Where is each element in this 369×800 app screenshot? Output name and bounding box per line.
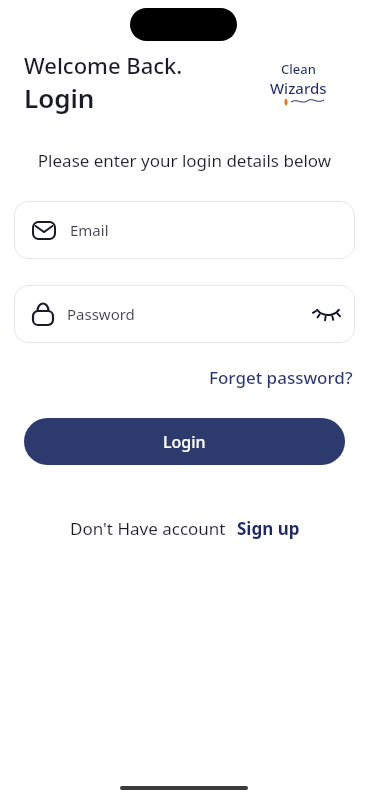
staticText: Welcome Back. [24, 50, 183, 80]
button[interactable]: Login [24, 418, 345, 465]
button[interactable]: Sign up [237, 517, 300, 540]
staticText: Forget password? [209, 366, 353, 389]
staticText: Sign up [237, 517, 300, 540]
button[interactable] [314, 301, 342, 327]
staticText: Clean [281, 60, 316, 78]
staticText: Email [70, 220, 109, 240]
button[interactable]: Password [14, 285, 355, 343]
staticText: Don't Have account [70, 517, 226, 540]
staticText: Login [163, 431, 206, 453]
staticText: Wizards [270, 78, 327, 98]
button[interactable]: Email [14, 201, 355, 259]
staticText: Please enter your login details below [0, 149, 369, 172]
staticText: Password [67, 304, 135, 324]
staticText: Login [24, 80, 95, 115]
button[interactable]: Forget password? [209, 366, 353, 389]
